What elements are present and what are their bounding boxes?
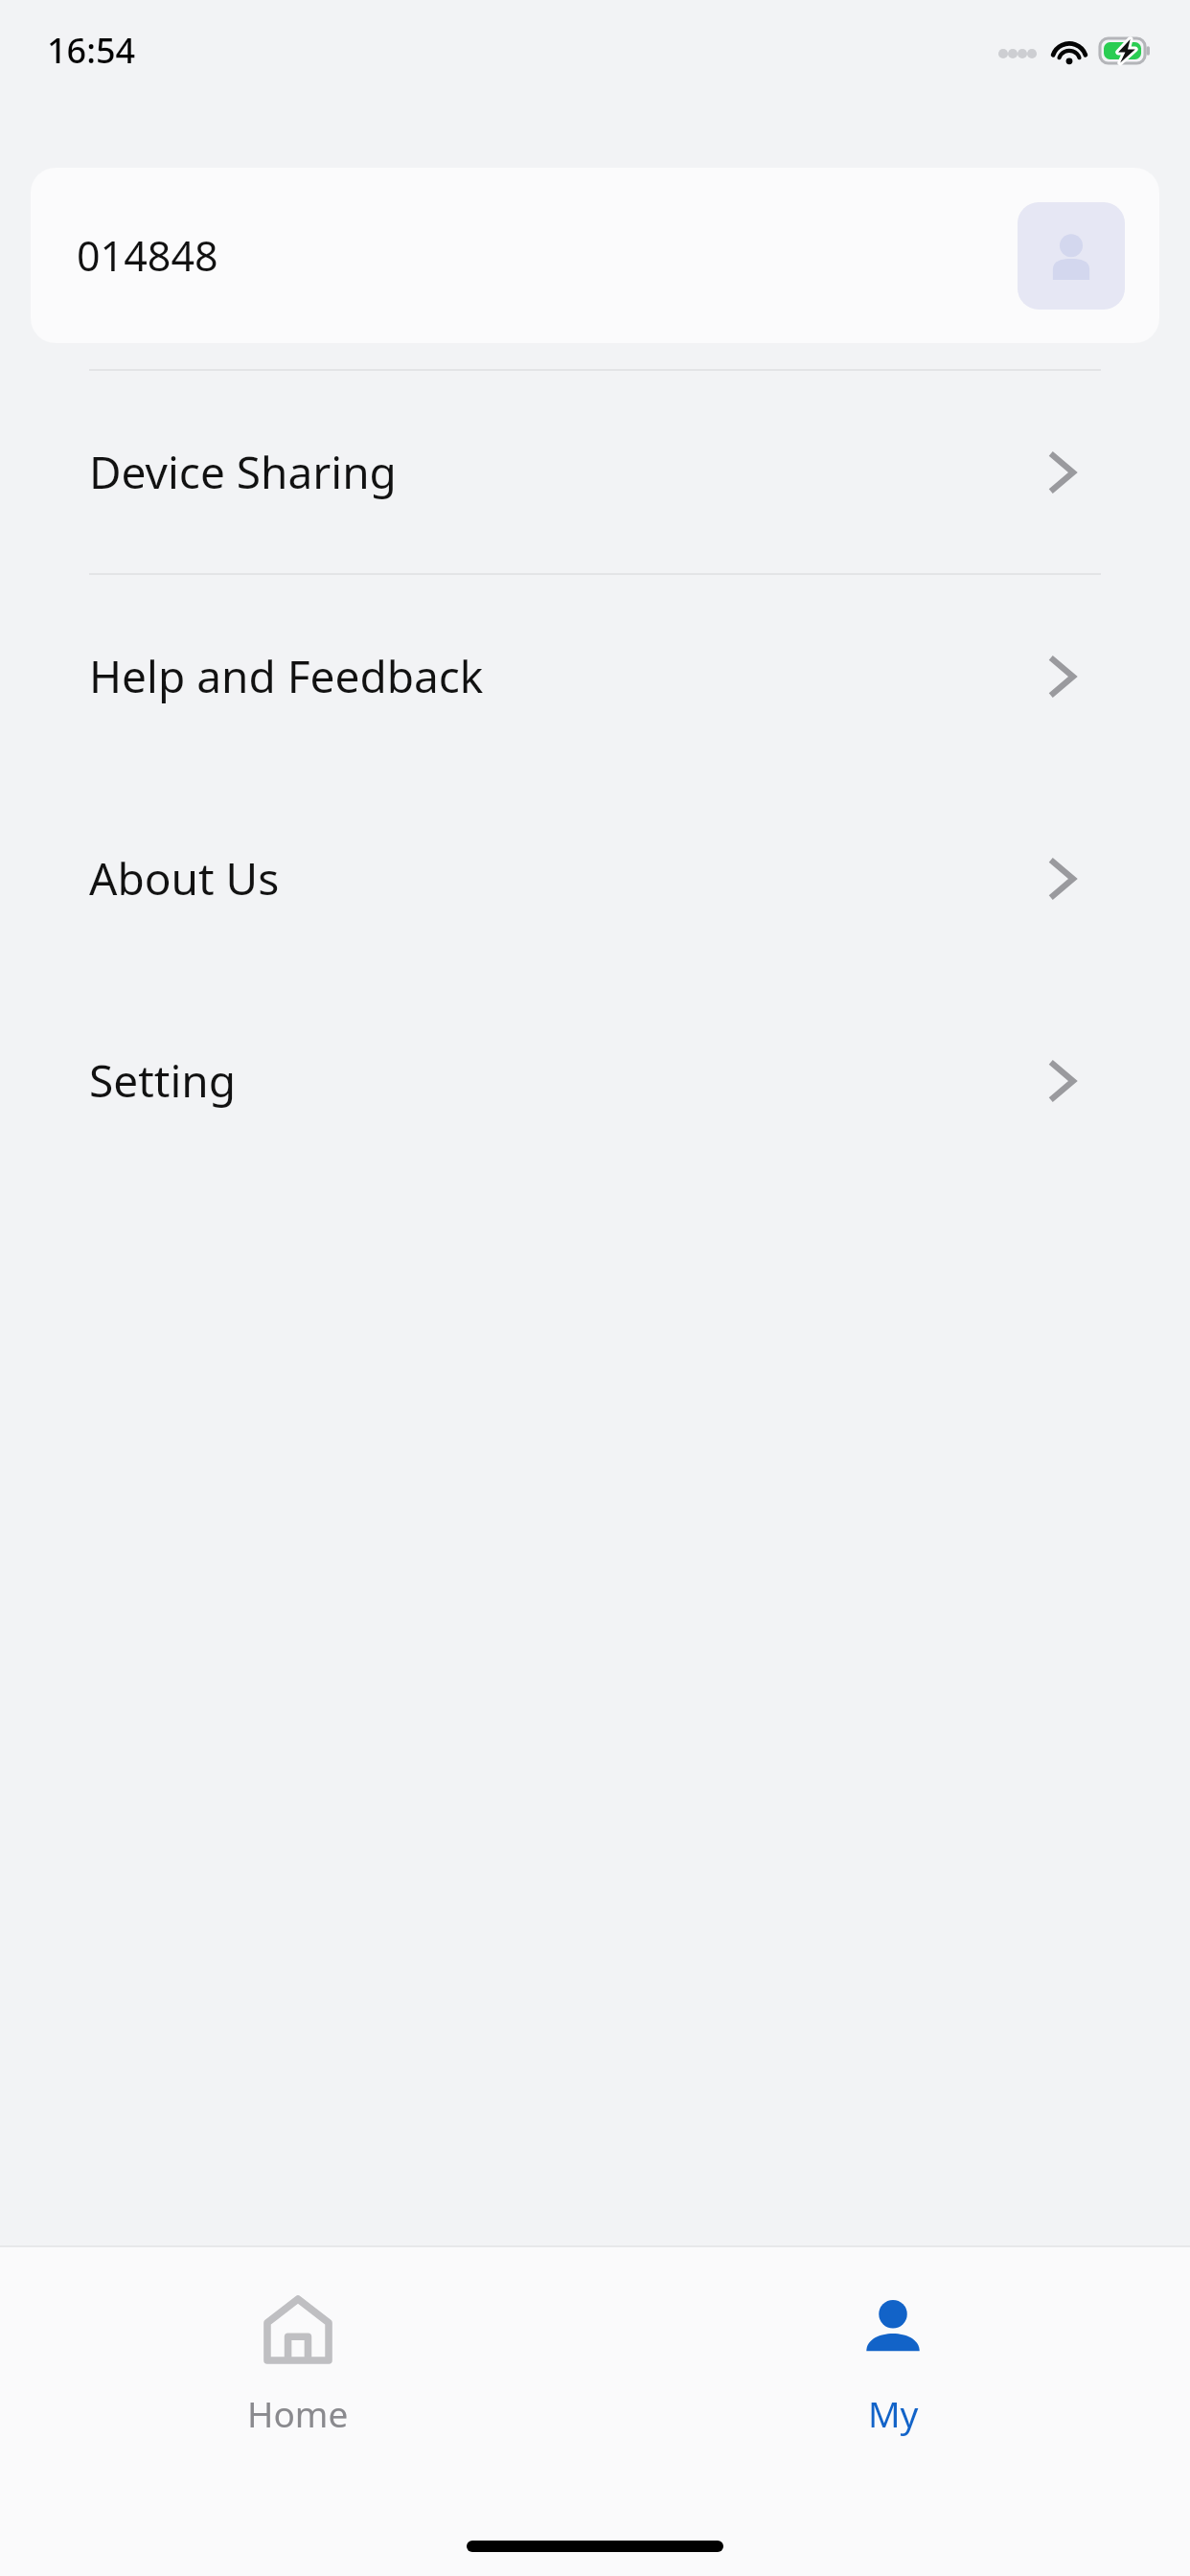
staticText: 16:54 [47,27,136,74]
staticText: Device Sharing [89,442,397,502]
staticText: 014848 [77,227,218,284]
button[interactable]: Home [173,2247,423,2437]
staticText: Help and Feedback [89,646,484,706]
staticText: My [868,2389,919,2437]
button[interactable]: Device Sharing [0,371,1190,573]
staticText: Home [247,2389,349,2437]
button[interactable]: My profile [768,2247,1018,2437]
button[interactable]: 014848 [31,168,1159,343]
staticText: Setting [89,1050,236,1111]
staticText: About Us [89,848,280,908]
button[interactable]: About Us [0,777,1190,979]
button[interactable]: Setting [0,979,1190,1182]
button[interactable]: Help and Feedback [0,575,1190,777]
